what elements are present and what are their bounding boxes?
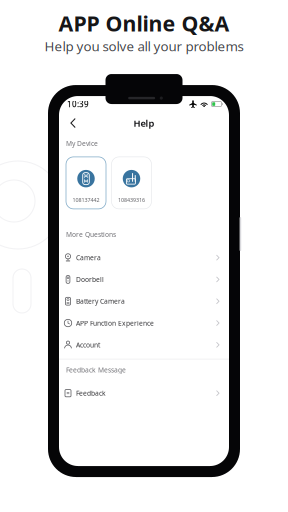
staticText: Feedback xyxy=(76,389,106,398)
button[interactable]: Feedback xyxy=(59,382,229,404)
staticText: More Questions xyxy=(66,230,116,239)
staticText: Feedback Message xyxy=(66,365,126,374)
staticText: Help you solve all your problems xyxy=(44,37,243,55)
staticText: Account xyxy=(76,340,100,349)
staticText: 108439316 xyxy=(118,196,145,203)
staticText: 108137442 xyxy=(72,196,99,203)
staticText: Doorbell xyxy=(76,275,104,284)
button[interactable]: Camera xyxy=(59,247,229,268)
staticText: 10:39 xyxy=(67,99,89,109)
button[interactable]: Battery Camera xyxy=(59,290,229,312)
staticText: My Device xyxy=(66,139,98,148)
staticText: Camera xyxy=(76,253,101,262)
button[interactable]: Doorbell xyxy=(59,268,229,290)
staticText: Help xyxy=(133,117,154,129)
button[interactable]: 108439316 xyxy=(111,157,151,209)
staticText: APP Function Experience xyxy=(76,319,154,327)
button[interactable]: Account xyxy=(59,334,229,356)
staticText: Battery Camera xyxy=(76,297,125,306)
button[interactable]: Back xyxy=(64,114,82,132)
button[interactable]: 108137442 xyxy=(66,157,106,209)
button[interactable]: APP Function Experience xyxy=(59,312,229,334)
staticText: APP Online Q&A xyxy=(58,9,229,37)
